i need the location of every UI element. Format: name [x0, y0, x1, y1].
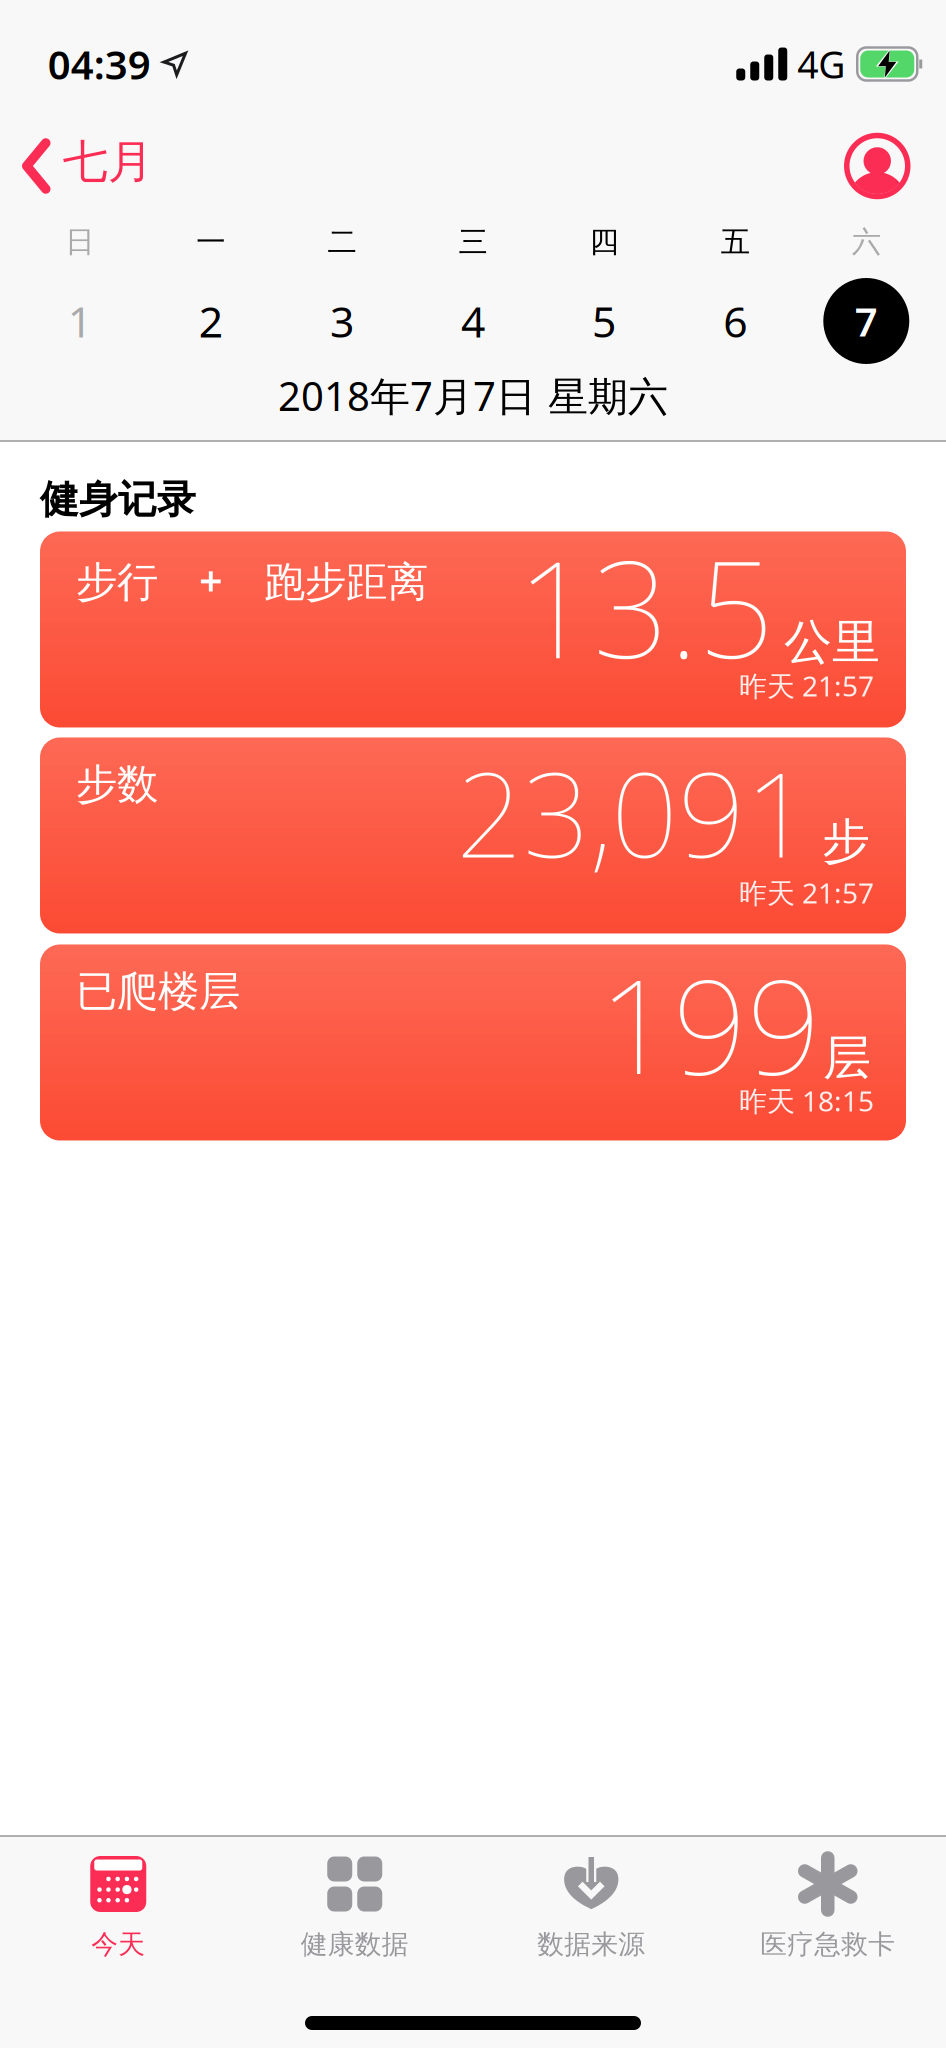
staticText: 四 [590, 224, 619, 260]
staticText: 步 [822, 812, 870, 871]
button[interactable]: 今天 [0, 1856, 236, 1961]
button[interactable]: 健康数据 [236, 1856, 473, 1961]
staticText: 04:39 [48, 37, 151, 90]
staticText: 昨天 21:57 [739, 874, 874, 911]
staticText: 健康数据 [301, 1928, 409, 1961]
button[interactable]: 1 [14, 277, 145, 365]
staticText: 3 [330, 293, 354, 349]
staticText: 七月 [63, 134, 153, 190]
staticText: 23,091 [456, 734, 812, 890]
staticText: 5 [592, 293, 616, 349]
staticText: 2 [199, 293, 223, 349]
staticText: 步行 + 跑步距离 [76, 553, 428, 608]
button[interactable]: 医疗急救卡 [709, 1856, 946, 1961]
button[interactable]: 步数 [40, 737, 906, 933]
staticText: 一 [196, 224, 225, 260]
staticText: 1 [68, 293, 92, 349]
staticText: 4G [797, 39, 845, 89]
staticText: 日 [65, 224, 94, 260]
button[interactable]: 4 [407, 277, 538, 365]
staticText: 6 [723, 293, 747, 349]
staticText: 2018年7月7日 星期六 [278, 369, 668, 422]
staticText: 健身记录 [40, 476, 196, 523]
staticText: 数据来源 [537, 1928, 645, 1961]
staticText: 三 [458, 224, 487, 260]
staticText: 7 [855, 294, 878, 347]
button[interactable]: 七月 [27, 138, 153, 194]
button[interactable]: 3 [276, 277, 407, 365]
staticText: 13.5 [517, 518, 774, 695]
button[interactable]: 2 [145, 277, 276, 365]
staticText: 今天 [91, 1928, 145, 1961]
staticText: 公里 [784, 613, 880, 672]
button[interactable]: 6 [670, 277, 801, 365]
button[interactable]: 已爬楼层 [40, 944, 906, 1140]
staticText: 已爬楼层 [76, 966, 240, 1017]
button[interactable]: 5 [538, 277, 670, 365]
staticText: 199 [599, 938, 821, 1110]
staticText: 二 [327, 224, 356, 260]
staticText: 医疗急救卡 [760, 1928, 895, 1961]
staticText: 六 [852, 224, 881, 260]
staticText: 4 [461, 293, 485, 349]
staticText: 层 [823, 1029, 871, 1088]
staticText: 昨天 21:57 [739, 667, 874, 704]
button[interactable]: 7 [801, 277, 932, 365]
button[interactable]: 步行 + 跑步距离 [40, 531, 906, 727]
button[interactable]: 数据来源 [473, 1856, 709, 1961]
staticText: 步数 [76, 759, 158, 810]
staticText: 昨天 18:15 [739, 1082, 874, 1119]
button[interactable] [845, 134, 909, 198]
staticText: 五 [721, 224, 750, 260]
